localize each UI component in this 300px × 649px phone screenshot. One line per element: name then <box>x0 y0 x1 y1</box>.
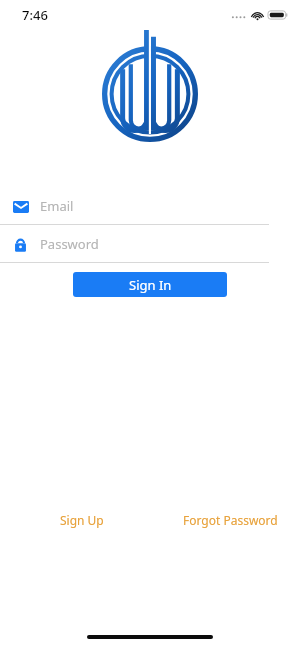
staticText: Forgot Password <box>183 512 278 528</box>
staticText: Sign In <box>129 276 172 294</box>
button[interactable]: Sign Up <box>56 509 108 531</box>
other: Password <box>12 236 29 253</box>
button[interactable]: Sign In <box>73 272 227 297</box>
button[interactable]: Forgot Password <box>179 509 282 531</box>
other: Email <box>12 198 29 215</box>
staticText: Email <box>40 197 74 215</box>
staticText: Sign Up <box>60 512 104 528</box>
button[interactable]: Password <box>0 233 300 255</box>
staticText: 7:46 <box>22 6 48 24</box>
staticText: Password <box>40 235 99 253</box>
button[interactable]: Email <box>0 195 300 217</box>
